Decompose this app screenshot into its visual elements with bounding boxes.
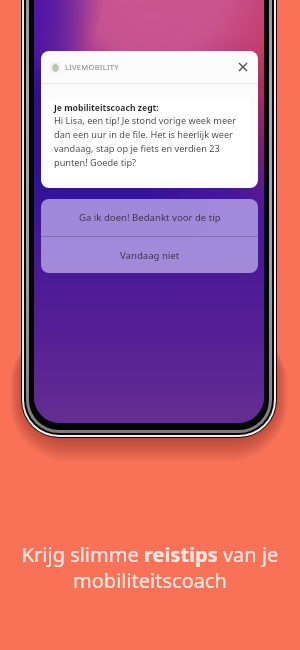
button[interactable]: Ga ik doen! Bedankt voor de tip	[41, 199, 258, 236]
staticText: LIVEMOBILITY	[65, 62, 119, 72]
staticText: Hi Lisa, een tip! Je stond vorige week m…	[54, 114, 246, 169]
staticText: Vandaag niet	[120, 249, 180, 262]
button[interactable]: LIVEMOBILITY	[41, 51, 258, 83]
staticText: Krijg slimme reistips van je mobiliteits…	[16, 541, 284, 594]
staticText: Ga ik doen! Bedankt voor de tip	[79, 211, 221, 224]
button[interactable]: Vandaag niet	[41, 237, 258, 273]
staticText: Je mobiliteitscoach zegt:	[54, 102, 159, 114]
button[interactable]: Close	[233, 57, 253, 77]
